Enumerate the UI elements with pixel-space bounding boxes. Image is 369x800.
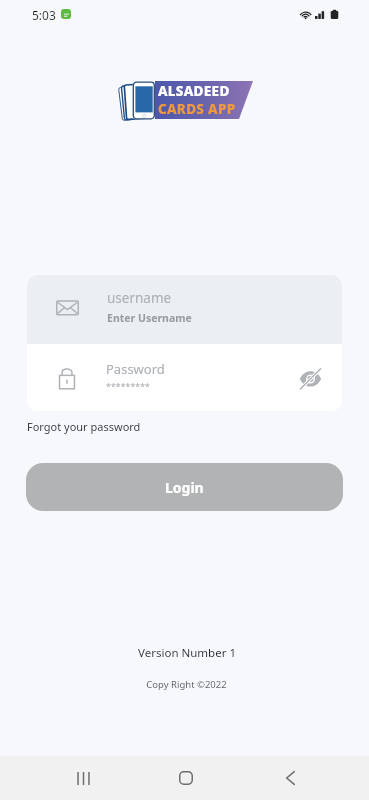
button[interactable]: Back	[266, 756, 314, 800]
staticText: CARDS APP	[158, 100, 236, 118]
staticText: *********	[106, 381, 150, 393]
staticText: Version Number 1	[138, 645, 236, 661]
staticText: username	[107, 289, 172, 307]
staticText: Enter Username	[107, 311, 192, 325]
staticText: 5:03	[32, 7, 56, 23]
button[interactable]: Password	[27, 344, 342, 411]
button[interactable]: username	[27, 275, 342, 344]
button[interactable]: Forgot your password	[27, 419, 141, 434]
button[interactable]: Login	[26, 463, 343, 511]
button[interactable]: Home	[162, 756, 210, 800]
staticText: Copy Right ©2022	[146, 678, 227, 691]
staticText: ALSADEED	[158, 82, 230, 100]
staticText: Login	[165, 478, 204, 497]
staticText: Password	[106, 360, 165, 378]
staticText: Forgot your password	[27, 419, 141, 434]
button[interactable]: Show password	[295, 363, 325, 393]
button[interactable]: Recent apps	[59, 756, 107, 800]
